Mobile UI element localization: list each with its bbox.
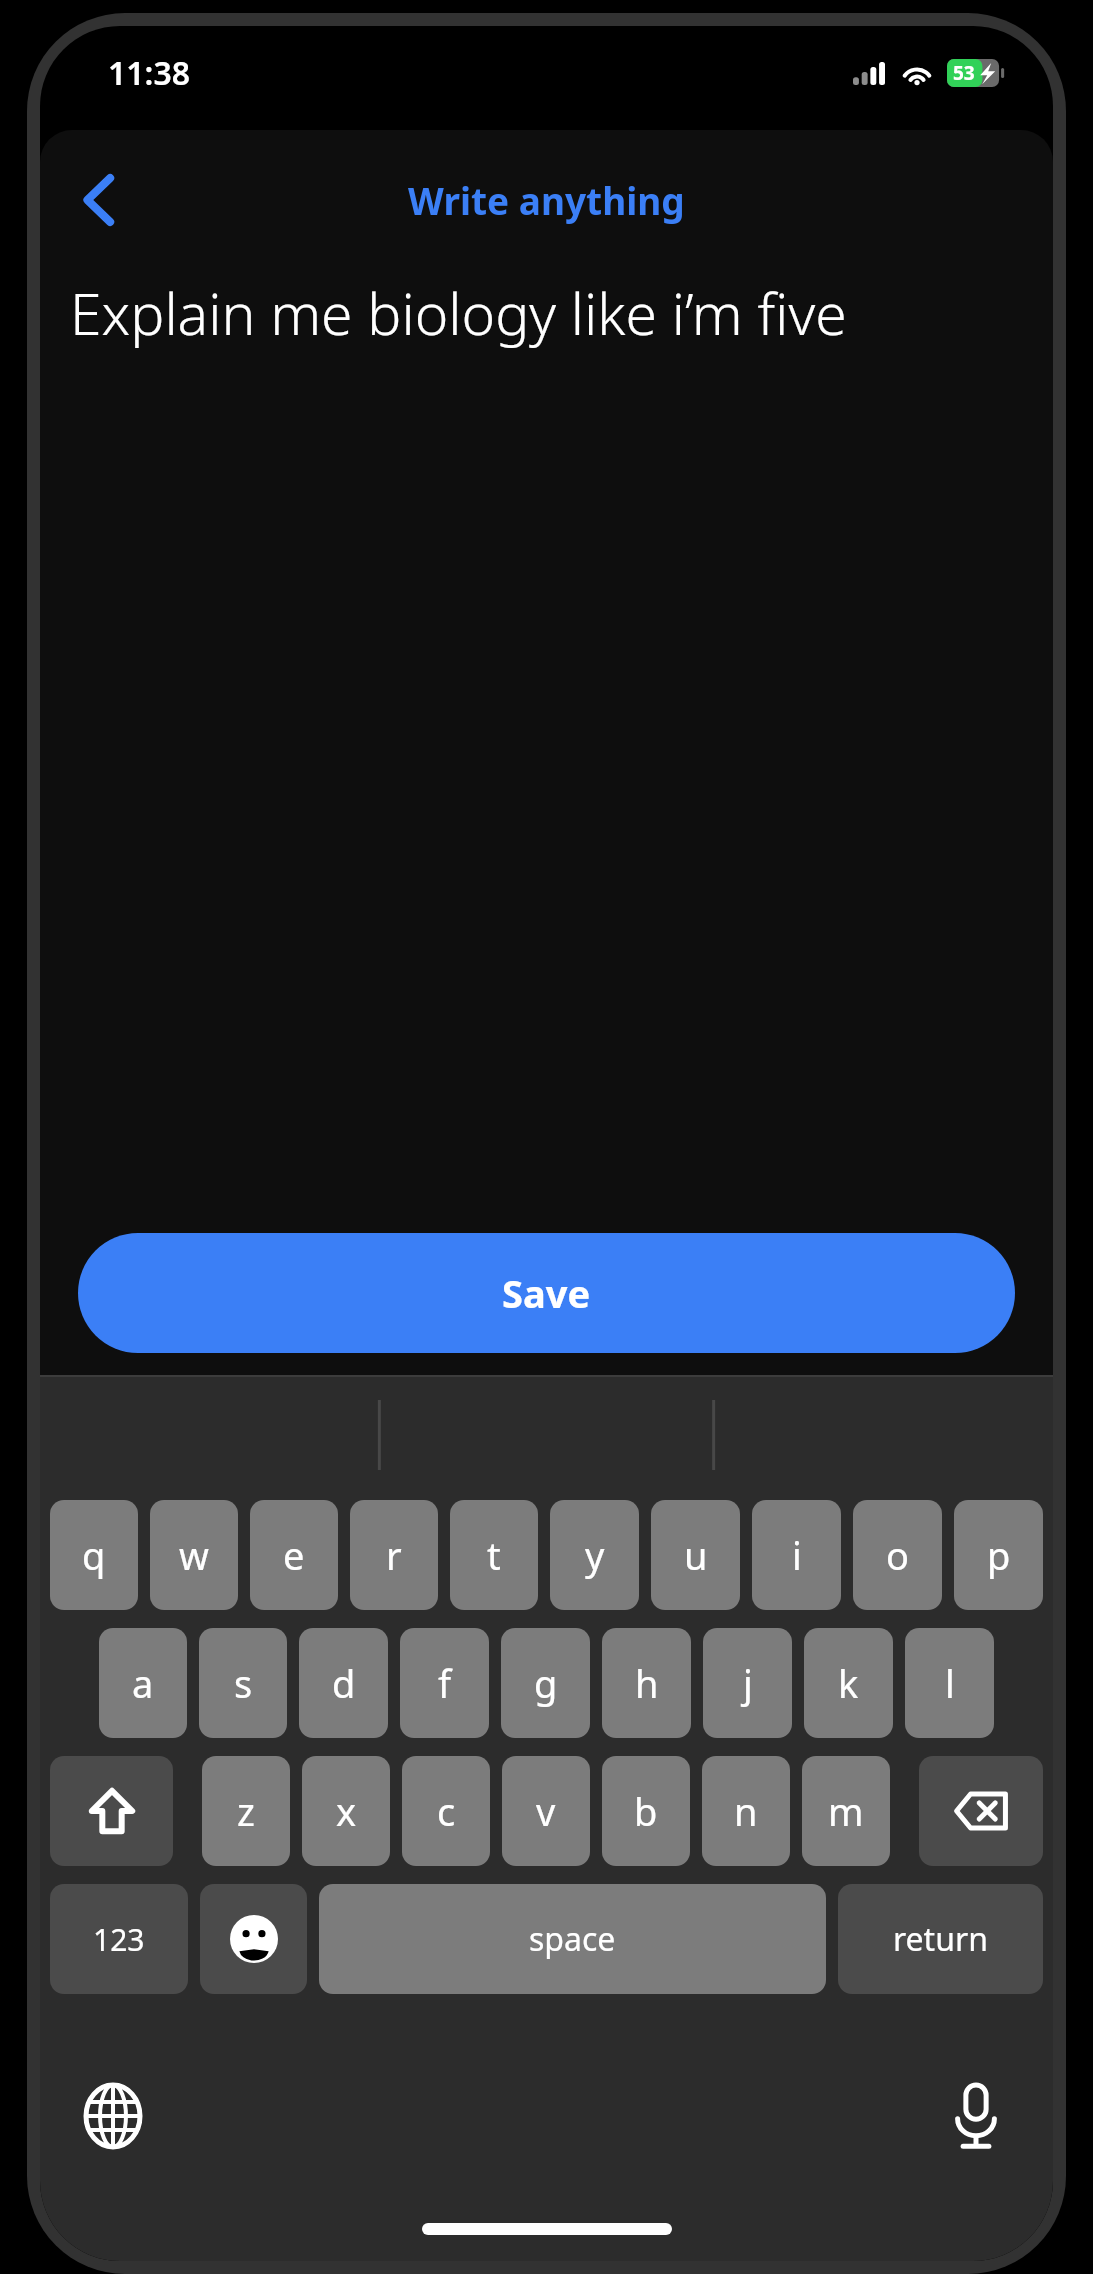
- staticText: n: [734, 1785, 758, 1837]
- staticText: Write anything: [408, 175, 685, 225]
- button[interactable]: return: [838, 1884, 1043, 1994]
- button[interactable]: e: [250, 1500, 338, 1610]
- staticText: k: [838, 1657, 859, 1709]
- staticText: u: [684, 1529, 708, 1581]
- staticText: r: [386, 1529, 402, 1581]
- staticText: l: [945, 1657, 955, 1709]
- staticText: q: [82, 1529, 106, 1581]
- button[interactable]: t: [450, 1500, 538, 1610]
- button[interactable]: m: [802, 1756, 890, 1866]
- button[interactable]: u: [651, 1500, 740, 1610]
- staticText: t: [487, 1529, 501, 1581]
- button[interactable]: j: [703, 1628, 792, 1738]
- button[interactable]: space: [319, 1884, 826, 1994]
- staticText: g: [534, 1657, 558, 1709]
- staticText: x: [336, 1785, 357, 1837]
- button[interactable]: i: [752, 1500, 841, 1610]
- staticText: space: [529, 1917, 616, 1961]
- button[interactable]: f: [400, 1628, 489, 1738]
- button[interactable]: x: [302, 1756, 390, 1866]
- button[interactable]: 123: [50, 1884, 188, 1994]
- staticText: 11:38: [108, 51, 191, 95]
- button[interactable]: w: [150, 1500, 238, 1610]
- button[interactable]: d: [299, 1628, 388, 1738]
- button[interactable]: Save: [78, 1233, 1015, 1353]
- staticText: z: [237, 1785, 255, 1837]
- staticText: w: [179, 1529, 209, 1581]
- button[interactable]: n: [702, 1756, 790, 1866]
- button[interactable]: Back: [62, 162, 138, 238]
- button[interactable]: z: [202, 1756, 290, 1866]
- button[interactable]: Change keyboard language: [70, 2073, 156, 2159]
- staticText: m: [828, 1785, 864, 1837]
- staticText: Explain me biology like i’m five: [70, 274, 1023, 352]
- button[interactable]: a: [99, 1628, 187, 1738]
- staticText: 123: [93, 1919, 145, 1960]
- button[interactable]: y: [550, 1500, 639, 1610]
- button[interactable]: l: [905, 1628, 994, 1738]
- staticText: c: [437, 1785, 456, 1837]
- staticText: y: [585, 1529, 605, 1581]
- button[interactable]: r: [350, 1500, 438, 1610]
- staticText: j: [743, 1657, 753, 1709]
- button[interactable]: Emoji: [200, 1884, 307, 1994]
- button[interactable]: Backspace: [919, 1756, 1043, 1866]
- button[interactable]: s: [199, 1628, 287, 1738]
- staticText: o: [886, 1529, 909, 1581]
- staticText: p: [987, 1529, 1011, 1581]
- staticText: a: [132, 1657, 154, 1709]
- staticText: f: [438, 1657, 452, 1709]
- staticText: 53: [953, 60, 975, 86]
- button[interactable]: o: [853, 1500, 942, 1610]
- staticText: Save: [502, 1267, 591, 1319]
- staticText: h: [635, 1657, 659, 1709]
- button[interactable]: b: [602, 1756, 690, 1866]
- staticText: i: [792, 1529, 802, 1581]
- staticText: d: [332, 1657, 356, 1709]
- button[interactable]: v: [502, 1756, 590, 1866]
- staticText: return: [893, 1917, 988, 1961]
- staticText: b: [634, 1785, 658, 1837]
- staticText: s: [234, 1657, 253, 1709]
- button[interactable]: Dictate: [933, 2073, 1019, 2159]
- staticText: v: [536, 1785, 556, 1837]
- button[interactable]: g: [501, 1628, 590, 1738]
- button[interactable]: Shift: [50, 1756, 173, 1866]
- button[interactable]: q: [50, 1500, 138, 1610]
- staticText: e: [283, 1529, 305, 1581]
- button[interactable]: h: [602, 1628, 691, 1738]
- button[interactable]: k: [804, 1628, 893, 1738]
- button[interactable]: c: [402, 1756, 490, 1866]
- button[interactable]: p: [954, 1500, 1043, 1610]
